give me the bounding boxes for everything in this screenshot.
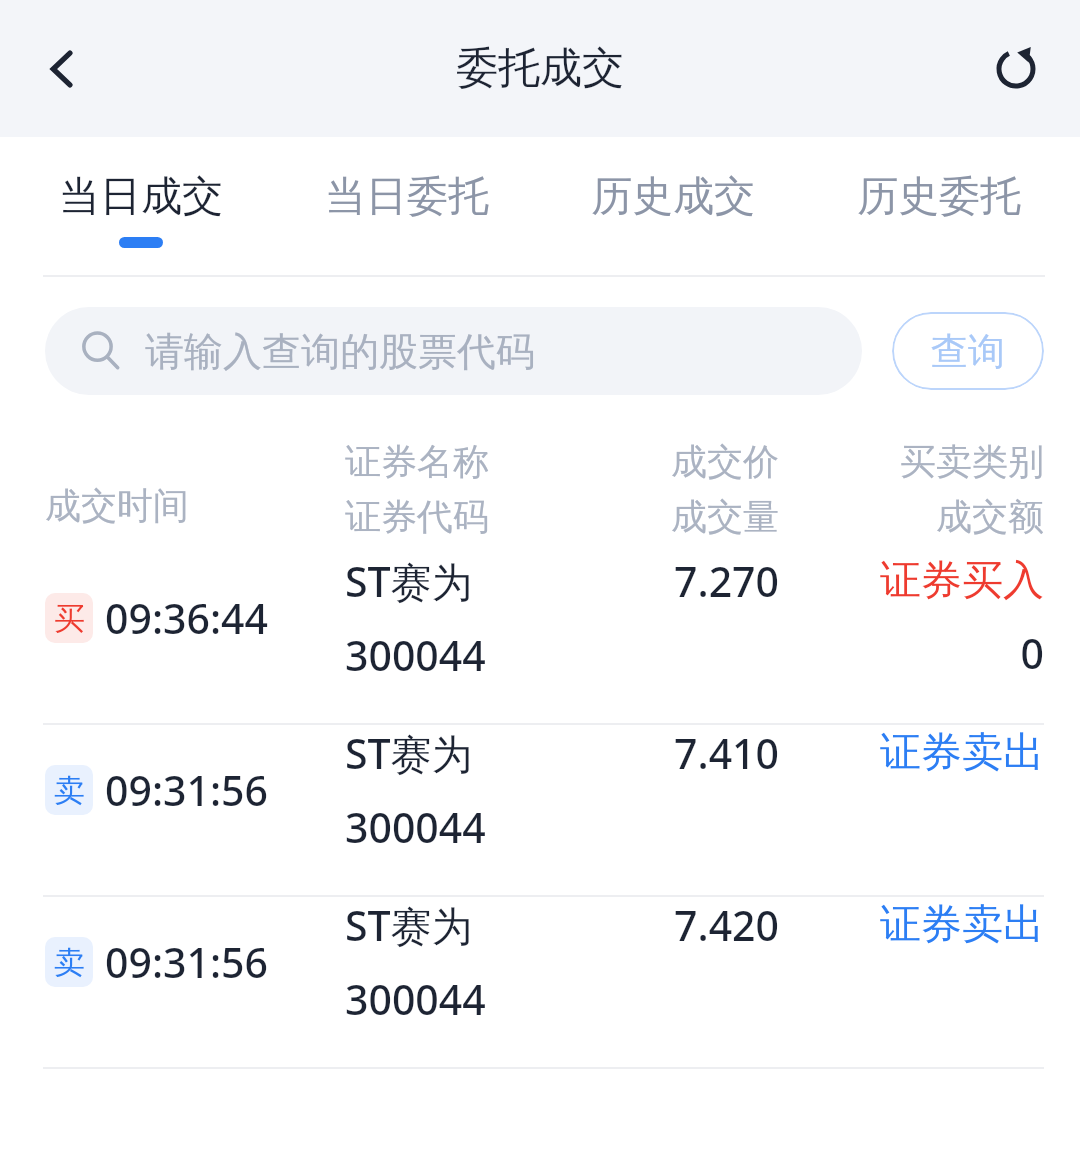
button[interactable]: 当日委托: [274, 137, 540, 277]
staticText: 证券卖出: [880, 727, 1044, 779]
staticText: ST赛为: [345, 553, 473, 609]
staticText: 09:36:44: [105, 590, 269, 646]
staticText: 7.410: [674, 725, 779, 781]
staticText: 成交量: [671, 494, 779, 539]
staticText: 成交额: [936, 494, 1044, 539]
staticText: 卖: [54, 771, 85, 810]
staticText: 300044: [345, 799, 486, 855]
staticText: 09:31:56: [105, 762, 269, 818]
staticText: 300044: [345, 627, 486, 683]
staticText: 7.420: [674, 897, 779, 953]
button[interactable]: 查询: [892, 312, 1044, 390]
button[interactable]: 历史成交: [540, 137, 806, 277]
staticText: ST赛为: [345, 897, 473, 953]
staticText: ST赛为: [345, 725, 473, 781]
staticText: 当日委托: [325, 171, 489, 223]
staticText: 成交时间: [45, 483, 189, 528]
button[interactable]: 当日成交: [8, 137, 274, 277]
staticText: 历史委托: [857, 171, 1021, 223]
staticText: 买: [54, 599, 85, 638]
staticText: 0: [1020, 625, 1044, 681]
button[interactable]: Refresh: [974, 27, 1058, 111]
staticText: 09:31:56: [105, 934, 269, 990]
staticText: 证券名称: [345, 439, 489, 484]
staticText: 历史成交: [591, 171, 755, 223]
button[interactable]: 历史委托: [806, 137, 1072, 277]
button[interactable]: 买: [0, 553, 1080, 723]
staticText: 证券代码: [345, 494, 489, 539]
staticText: 证券卖出: [880, 899, 1044, 951]
staticText: 7.270: [674, 553, 779, 609]
staticText: 300044: [345, 971, 486, 1027]
staticText: 买卖类别: [900, 439, 1044, 484]
button[interactable]: Back: [20, 27, 104, 111]
staticText: 成交价: [671, 439, 779, 484]
button[interactable]: 卖: [0, 897, 1080, 1067]
button[interactable]: 请输入查询的股票代码: [45, 307, 862, 395]
staticText: 卖: [54, 943, 85, 982]
staticText: 请输入查询的股票代码: [145, 327, 535, 376]
staticText: 委托成交: [456, 42, 624, 95]
button[interactable]: 卖: [0, 725, 1080, 895]
staticText: 当日成交: [59, 171, 223, 223]
staticText: 查询: [931, 328, 1005, 375]
staticText: 证券买入: [880, 555, 1044, 607]
